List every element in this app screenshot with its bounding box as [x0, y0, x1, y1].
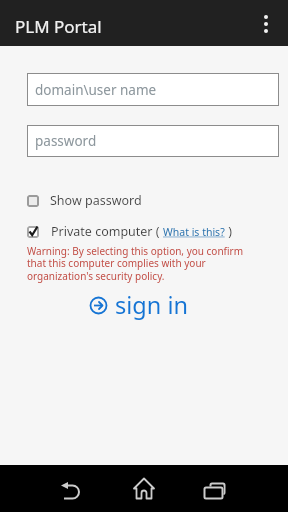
- staticText: sign in: [115, 289, 188, 321]
- button[interactable]: [42, 465, 102, 512]
- button[interactable]: [185, 465, 245, 512]
- staticText: ): [225, 223, 233, 240]
- button[interactable]: [27, 225, 40, 238]
- button[interactable]: domain\user name: [27, 73, 279, 106]
- button[interactable]: [114, 465, 174, 512]
- staticText: PLM Portal: [15, 15, 102, 38]
- staticText: Private computer (: [51, 223, 163, 240]
- staticText: password: [35, 132, 97, 150]
- button[interactable]: password: [27, 125, 279, 157]
- staticText: What is this?: [163, 225, 225, 239]
- button[interactable]: What is this?: [163, 225, 225, 239]
- staticText: Warning: By selecting this option, you c…: [27, 244, 244, 283]
- button[interactable]: Show password: [27, 192, 142, 209]
- button[interactable]: [244, 0, 288, 46]
- staticText: Show password: [50, 192, 142, 209]
- staticText: domain\user name: [35, 81, 157, 99]
- button[interactable]: sign in: [89, 289, 188, 321]
